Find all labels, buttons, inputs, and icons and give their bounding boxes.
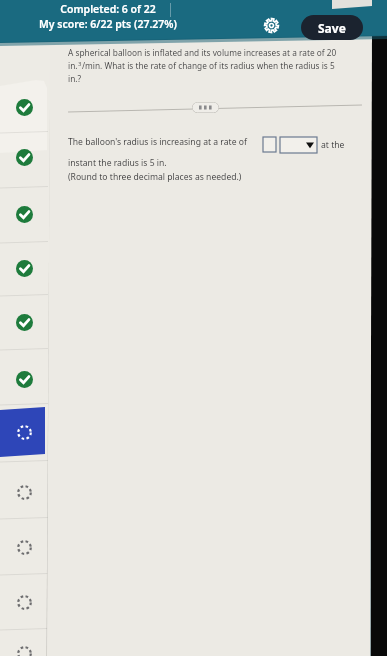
button[interactable]: Save bbox=[301, 15, 363, 40]
staticText: in.? bbox=[68, 73, 82, 84]
staticText: Completed: 6 of 22 bbox=[20, 2, 196, 16]
button[interactable]: Settings bbox=[259, 13, 283, 37]
staticText: (Round to three decimal places as needed… bbox=[68, 171, 242, 183]
button[interactable]: Question not started bbox=[0, 466, 48, 518]
staticText: Save bbox=[318, 20, 346, 36]
staticText: at the bbox=[321, 139, 345, 151]
staticText: instant the radius is 5 in. bbox=[68, 157, 167, 169]
button[interactable]: Expand bbox=[192, 102, 219, 113]
button[interactable]: Question not started bbox=[0, 521, 48, 573]
staticText: The balloon's radius is increasing at a … bbox=[68, 136, 247, 148]
button[interactable]: Question completed bbox=[0, 296, 48, 348]
button[interactable]: Question not started bbox=[0, 406, 48, 458]
button[interactable]: Question not started bbox=[0, 627, 48, 656]
staticText: 3 bbox=[78, 60, 82, 68]
button[interactable]: Answer field bbox=[263, 137, 276, 152]
staticText: My score: 6/22 pts (27.27%) bbox=[20, 17, 196, 31]
button[interactable]: Question completed bbox=[0, 188, 48, 240]
staticText: /min. What is the rate of change of its … bbox=[82, 60, 335, 71]
button[interactable]: Question completed bbox=[0, 353, 48, 405]
button[interactable]: Units dropdown bbox=[280, 137, 317, 153]
button[interactable]: Question not started bbox=[0, 576, 48, 628]
button[interactable]: Question completed bbox=[0, 131, 48, 183]
staticText: in. bbox=[68, 60, 78, 71]
button[interactable]: Question completed bbox=[0, 242, 48, 294]
button[interactable]: Question completed bbox=[0, 81, 48, 133]
staticText: A spherical balloon is inflated and its … bbox=[68, 47, 337, 58]
